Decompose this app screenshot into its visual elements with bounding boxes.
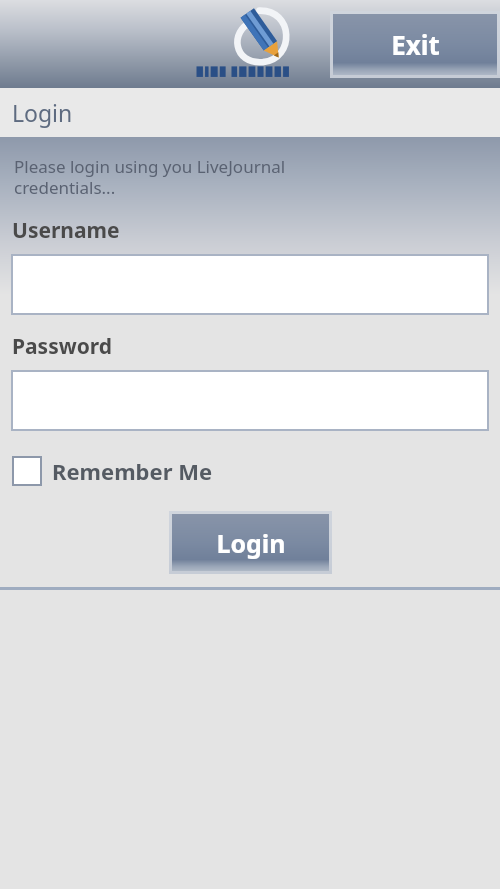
button[interactable]: Exit (330, 11, 500, 78)
staticText: Login (12, 97, 73, 128)
staticText: Login (216, 526, 286, 560)
staticText: Remember Me (52, 456, 213, 486)
button[interactable]: Login (169, 511, 332, 574)
button[interactable]: Remember Me (12, 453, 213, 489)
staticText: Password (12, 332, 113, 361)
button[interactable] (11, 370, 489, 431)
staticText: Please login using you LiveJournal crede… (14, 155, 286, 199)
button[interactable] (11, 254, 489, 315)
staticText: Username (12, 216, 120, 245)
staticText: Exit (391, 27, 440, 62)
